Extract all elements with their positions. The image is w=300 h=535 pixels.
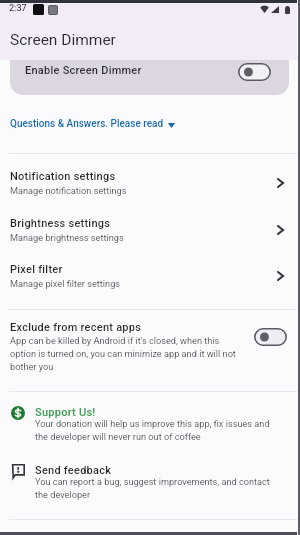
button[interactable]: Exclude from recent apps bbox=[0, 316, 300, 386]
staticText: Support Us! bbox=[35, 406, 96, 419]
button[interactable]: Questions & Answers. Please read bbox=[10, 118, 175, 130]
button[interactable]: Send feedback bbox=[0, 457, 300, 507]
staticText: Send feedback bbox=[35, 464, 112, 477]
other: Support Us bbox=[11, 406, 25, 420]
button[interactable]: Enable Screen Dimmer bbox=[10, 60, 289, 95]
staticText: Manage brightness settings bbox=[10, 232, 124, 243]
staticText: Exclude from recent apps bbox=[10, 321, 142, 334]
button[interactable]: Toggle bbox=[254, 328, 287, 346]
staticText: Questions & Answers. Please read bbox=[10, 118, 164, 130]
staticText: Pixel filter bbox=[10, 263, 63, 276]
staticText: You can report a bug, suggest improvemen… bbox=[35, 476, 285, 500]
staticText: Screen Dimmer bbox=[10, 31, 116, 49]
staticText: Notification settings bbox=[10, 170, 116, 183]
button[interactable]: Pixel filter bbox=[0, 263, 300, 310]
staticText: Manage pixel filter settings bbox=[10, 278, 121, 289]
button[interactable]: Notification settings bbox=[0, 170, 300, 217]
staticText: Brightness settings bbox=[10, 217, 111, 230]
staticText: Your donation will help us improve this … bbox=[35, 418, 285, 442]
staticText: 2:37 bbox=[9, 3, 27, 14]
staticText: Enable Screen Dimmer bbox=[25, 64, 142, 77]
button[interactable]: Support Us bbox=[0, 399, 300, 447]
staticText: App can be killed by Android if it's clo… bbox=[10, 335, 260, 372]
staticText: Manage notification settings bbox=[10, 185, 127, 196]
button[interactable]: Toggle bbox=[238, 63, 271, 81]
button[interactable]: Brightness settings bbox=[0, 217, 300, 264]
other: Send feedback bbox=[11, 464, 25, 478]
